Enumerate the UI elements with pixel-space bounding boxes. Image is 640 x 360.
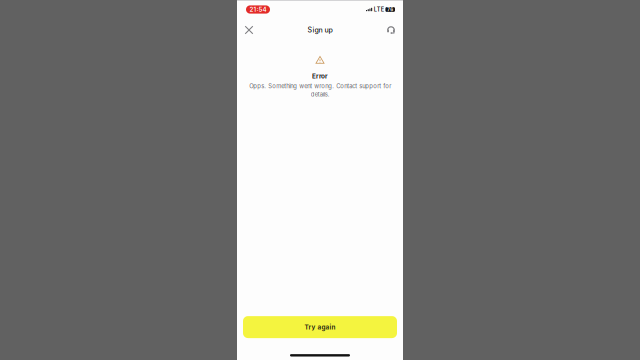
button[interactable]: Try again (243, 316, 397, 338)
staticText: Try again (304, 323, 335, 331)
staticText: LTE (374, 6, 384, 13)
button[interactable]: Contact support (383, 22, 399, 38)
button[interactable]: Close (241, 22, 257, 38)
staticText: 76 (387, 7, 393, 12)
staticText: Sign up (307, 26, 332, 34)
staticText: 21:54 (249, 6, 266, 13)
staticText: Error (312, 72, 328, 80)
staticText: Opps. Something went wrong. Contact supp… (249, 83, 391, 98)
